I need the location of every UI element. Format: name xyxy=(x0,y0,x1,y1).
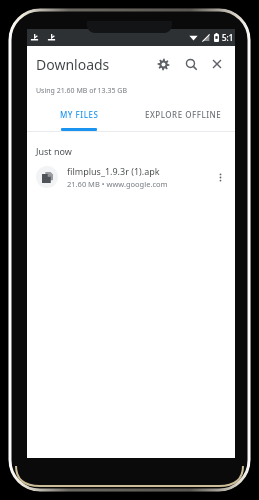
staticText: Using 21.60 MB of 13.35 GB xyxy=(36,86,127,96)
button[interactable]: filmplus_1.9.3r (1).apk xyxy=(27,157,235,197)
button[interactable]: Close xyxy=(205,52,229,76)
button[interactable]: Settings xyxy=(151,52,175,76)
button[interactable]: Search xyxy=(179,52,203,76)
staticText: Downloads xyxy=(36,55,110,74)
button[interactable]: More options xyxy=(210,167,230,187)
staticText: 21.60 MB • www.google.com xyxy=(67,179,168,189)
staticText: filmplus_1.9.3r (1).apk xyxy=(67,165,160,177)
staticText: 5:1 xyxy=(222,32,234,43)
staticText: Just now xyxy=(36,145,72,157)
staticText: MY FILES xyxy=(60,109,99,120)
staticText: EXPLORE OFFLINE xyxy=(145,109,222,120)
button[interactable]: EXPLORE OFFLINE xyxy=(131,100,235,128)
button[interactable]: MY FILES xyxy=(27,100,131,128)
